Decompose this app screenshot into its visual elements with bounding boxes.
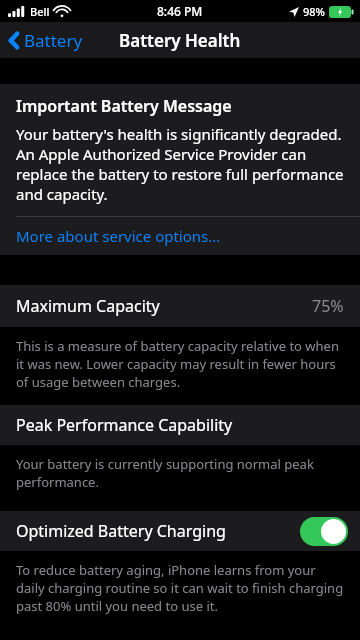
staticText: Bell: [30, 4, 50, 19]
button[interactable]: Optimized Battery Charging toggle: [300, 517, 348, 546]
staticText: Your battery's health is significantly d…: [16, 124, 344, 204]
staticText: Optimized Battery Charging: [16, 520, 226, 542]
staticText: To reduce battery aging, iPhone learns f…: [16, 561, 344, 615]
staticText: Important Battery Message: [16, 95, 232, 117]
staticText: Battery Health: [119, 29, 241, 52]
staticText: 98%: [303, 4, 325, 19]
staticText: This is a measure of battery capacity re…: [16, 337, 344, 391]
staticText: 75%: [312, 295, 344, 317]
button[interactable]: Peak Performance Capability: [0, 405, 360, 445]
staticText: Battery: [24, 29, 83, 52]
button[interactable]: Battery: [0, 22, 91, 58]
staticText: 8:46 PM: [157, 3, 203, 19]
button[interactable]: More about service options...: [0, 217, 360, 255]
staticText: More about service options...: [16, 226, 221, 246]
button[interactable]: Optimized Battery Charging: [0, 511, 360, 551]
staticText: Peak Performance Capability: [16, 414, 233, 436]
staticText: Your battery is currently supporting nor…: [16, 455, 314, 491]
button[interactable]: Maximum Capacity: [0, 285, 360, 327]
staticText: Maximum Capacity: [16, 295, 160, 317]
